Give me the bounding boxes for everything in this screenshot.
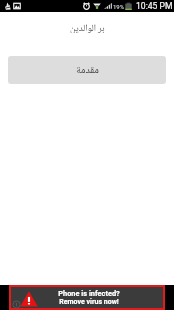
staticText: 10:45 PM xyxy=(136,1,173,11)
staticText: 19% xyxy=(113,3,125,10)
staticText: مقدمة xyxy=(76,63,99,77)
staticText: Remove virus now! xyxy=(59,298,119,306)
button[interactable]: مقدمة xyxy=(8,56,166,84)
staticText: بر الوالدين xyxy=(70,22,105,33)
button[interactable]: Phone is infected? Remove virus now! xyxy=(11,287,163,308)
staticText: Phone is infected? xyxy=(58,289,120,298)
